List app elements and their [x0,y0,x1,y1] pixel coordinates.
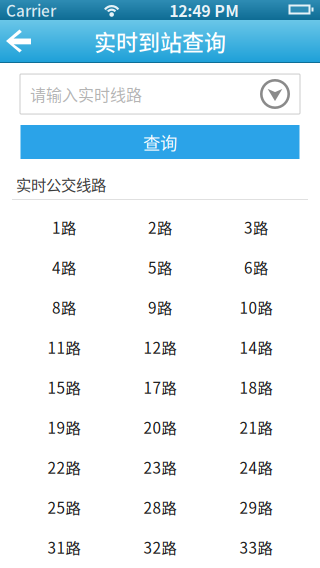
button[interactable]: 2路 [112,207,208,247]
staticText: 18路 [239,376,272,398]
button[interactable]: 22路 [16,447,112,487]
button[interactable]: 33路 [208,527,304,567]
button[interactable]: Choose line [260,79,290,109]
staticText: 实时公交线路 [16,173,106,195]
button[interactable]: 18路 [208,367,304,407]
button[interactable]: 20路 [112,407,208,447]
button[interactable]: 31路 [16,527,112,567]
staticText: 22路 [47,456,80,478]
staticText: 14路 [239,336,272,358]
button[interactable]: Back [0,20,44,62]
staticText: 3路 [244,216,268,238]
button[interactable]: 查询 [20,125,299,159]
staticText: 8路 [52,296,76,318]
staticText: 10路 [239,296,272,318]
staticText: 17路 [143,376,176,398]
button[interactable]: 12路 [112,327,208,367]
staticText: 21路 [239,416,272,438]
button[interactable]: 32路 [112,527,208,567]
staticText: Carrier [6,0,56,21]
staticText: 29路 [239,496,272,518]
staticText: 12:49 PM [169,0,239,22]
button[interactable]: 1路 [16,207,112,247]
staticText: 15路 [47,376,80,398]
staticText: 23路 [143,456,176,478]
staticText: 12路 [143,336,176,358]
staticText: 11路 [47,336,80,358]
staticText: 20路 [143,416,176,438]
button[interactable]: 4路 [16,247,112,287]
button[interactable]: 28路 [112,487,208,527]
button[interactable]: 14路 [208,327,304,367]
staticText: 32路 [143,536,176,558]
staticText: 查询 [143,129,177,155]
button[interactable]: 24路 [208,447,304,487]
button[interactable]: 19路 [16,407,112,447]
staticText: 6路 [244,256,268,278]
button[interactable]: 17路 [112,367,208,407]
button[interactable]: 5路 [112,247,208,287]
button[interactable]: 9路 [112,287,208,327]
staticText: 4路 [52,256,76,278]
button[interactable]: 25路 [16,487,112,527]
staticText: 28路 [143,496,176,518]
staticText: 19路 [47,416,80,438]
staticText: 实时到站查询 [94,25,226,57]
button[interactable]: 3路 [208,207,304,247]
button[interactable]: 21路 [208,407,304,447]
button[interactable]: 29路 [208,487,304,527]
button[interactable]: 23路 [112,447,208,487]
staticText: 9路 [148,296,172,318]
button[interactable]: 11路 [16,327,112,367]
staticText: 1路 [52,216,76,238]
button[interactable]: 10路 [208,287,304,327]
staticText: 31路 [47,536,80,558]
staticText: 24路 [239,456,272,478]
staticText: 5路 [148,256,172,278]
staticText: 请输入实时线路 [30,82,142,106]
button[interactable]: 15路 [16,367,112,407]
staticText: 25路 [47,496,80,518]
button[interactable]: 8路 [16,287,112,327]
staticText: 33路 [239,536,272,558]
button[interactable]: 6路 [208,247,304,287]
staticText: 2路 [148,216,172,238]
